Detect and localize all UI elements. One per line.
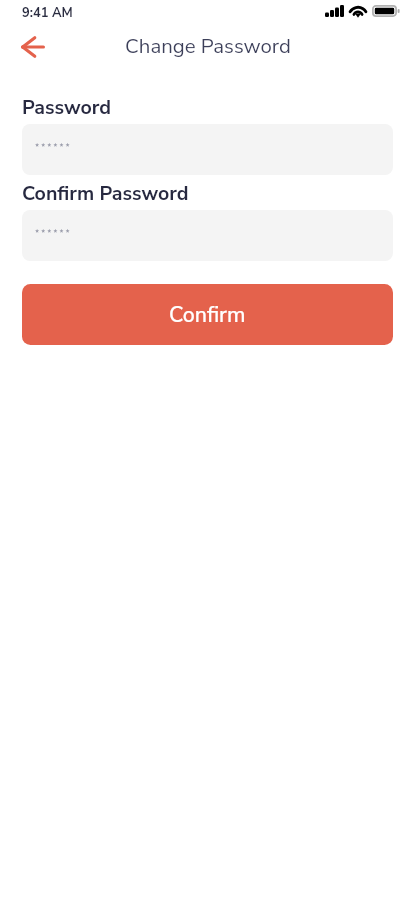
button[interactable]	[22, 210, 393, 261]
staticText: Change Password	[125, 32, 291, 60]
button[interactable]: Confirm	[22, 284, 393, 345]
button[interactable]	[22, 124, 393, 175]
staticText: Password	[22, 94, 112, 121]
button[interactable]: Back	[11, 25, 55, 69]
staticText: Confirm	[169, 300, 246, 329]
staticText: 9:41 AM	[22, 4, 73, 22]
staticText: Confirm Password	[22, 180, 189, 207]
